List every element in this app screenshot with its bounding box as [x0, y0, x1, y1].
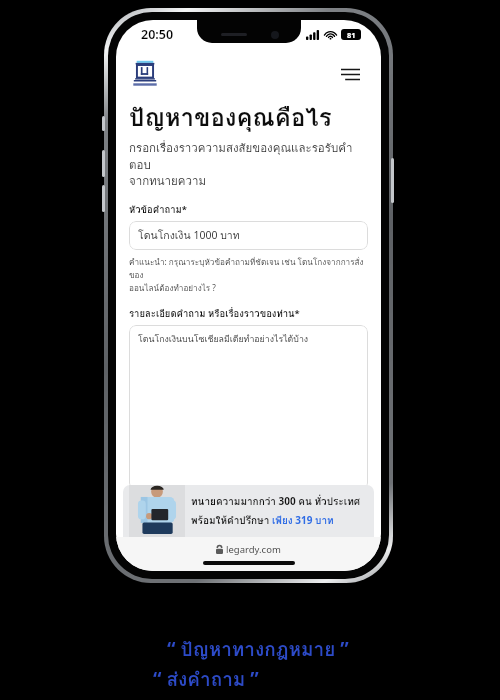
staticText: คำแนะนำ: กรุณาระบุหัวข้อคำถามที่ชัดเจน เ… [129, 256, 368, 294]
staticText: หัวข้อคำถาม* [129, 202, 187, 217]
staticText: พร้อมให้คำปรึกษา เพียง 319 บาท [191, 513, 334, 529]
staticText: กรอกเรื่องราวความสงสัยของคุณและรอรับคำตอ… [129, 139, 368, 190]
button[interactable]: โดนโกงเงินบนโซเชียลมีเดียทำอย่างไรได้บ้า… [129, 325, 368, 490]
staticText: โดนโกงเงิน 1000 บาท [138, 227, 240, 244]
staticText: จำนวน 41 คำ [323, 493, 368, 505]
staticText: ปัญหาของคุณคือไร [129, 98, 332, 136]
staticText: โดนโกงเงินบนโซเชียลมีเดียทำอย่างไรได้บ้า… [138, 332, 309, 346]
button[interactable]: ทนายความมากกว่า 300 คน ทั่วประเทศ [116, 485, 381, 537]
staticText: คำแนะนำ: [129, 507, 167, 520]
staticText: legardy.com [226, 543, 281, 556]
staticText: รายละเอียดคำถาม หรือเรื่องราวของท่าน* [129, 306, 300, 321]
staticText: “ ปัญหาทางกฎหมาย ” [167, 634, 349, 664]
button[interactable]: Menu [333, 57, 367, 91]
staticText: ทนายความมากกว่า 300 คน ทั่วประเทศ [191, 494, 361, 510]
staticText: 1. รายละเอียดคำถามห้ามต่ำกว่า 120 คำ [129, 522, 275, 535]
button[interactable]: โดนโกงเงิน 1000 บาท [129, 221, 368, 250]
staticText: “ ส่งคำถาม ” [153, 664, 259, 694]
staticText: 20:50 [141, 26, 174, 43]
staticText: 81 [347, 30, 356, 40]
